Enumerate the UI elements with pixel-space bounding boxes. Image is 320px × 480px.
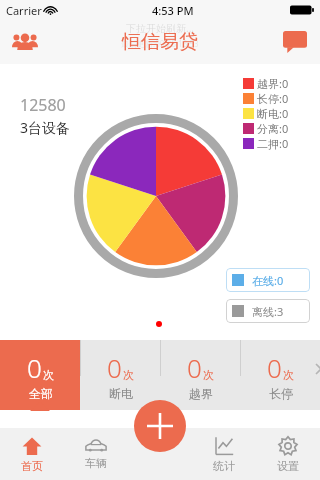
staticText: 越界:0 — [257, 76, 289, 91]
staticText: Carrier — [6, 3, 42, 18]
staticText: 离线:3 — [252, 304, 284, 319]
staticText: 0 — [107, 350, 122, 385]
button[interactable]: 分离:0 — [243, 121, 289, 136]
staticText: 4:53 PM — [152, 3, 194, 18]
staticText: 长停:0 — [257, 91, 289, 106]
staticText: 全部 — [29, 386, 53, 401]
button[interactable]: 二押:0 — [243, 136, 289, 151]
staticText: 3台设备 — [20, 118, 71, 137]
staticText: 0 — [267, 350, 282, 385]
button[interactable]: Contacts — [8, 25, 42, 59]
staticText: 次 — [203, 368, 214, 382]
button[interactable]: 长停:0 — [243, 91, 289, 106]
staticText: 设置 — [277, 459, 299, 473]
button[interactable]: Add — [134, 400, 186, 452]
staticText: 恒信易贷 — [122, 30, 198, 54]
button[interactable]: 离线:3 — [226, 299, 310, 323]
button[interactable]: 首页 — [0, 428, 64, 480]
button[interactable]: 0 — [81, 340, 160, 410]
staticText: 首页 — [21, 459, 43, 473]
staticText: 越界 — [189, 386, 213, 401]
staticText: 0 — [27, 350, 42, 385]
button[interactable]: 0 — [0, 340, 80, 410]
button[interactable]: 设置 — [256, 428, 320, 480]
button[interactable]: Messages — [278, 25, 312, 59]
staticText: 在线:0 — [252, 273, 284, 288]
staticText: 0 — [187, 350, 202, 385]
button[interactable]: 0 — [241, 340, 320, 410]
button[interactable]: 在线:0 — [226, 268, 310, 292]
button[interactable]: 统计 — [192, 428, 256, 480]
button[interactable]: 0 — [161, 340, 240, 410]
staticText: 长停 — [269, 386, 293, 401]
staticText: 断电 — [109, 386, 133, 401]
staticText: 12580 — [20, 94, 66, 116]
staticText: 次 — [123, 368, 134, 382]
staticText: 车辆 — [85, 456, 107, 470]
button[interactable]: 断电:0 — [243, 106, 289, 121]
staticText: 分离:0 — [257, 121, 289, 136]
staticText: 统计 — [213, 459, 235, 473]
staticText: 二押:0 — [257, 136, 289, 151]
staticText: 最后更新:09-25 16:53 — [121, 38, 199, 49]
staticText: 次 — [283, 368, 294, 382]
staticText: 断电:0 — [257, 106, 289, 121]
staticText: 次 — [43, 368, 54, 382]
button[interactable]: 越界:0 — [243, 76, 289, 91]
staticText: 下拉开始刷新... — [126, 21, 195, 35]
button[interactable]: 车辆 — [64, 428, 128, 480]
